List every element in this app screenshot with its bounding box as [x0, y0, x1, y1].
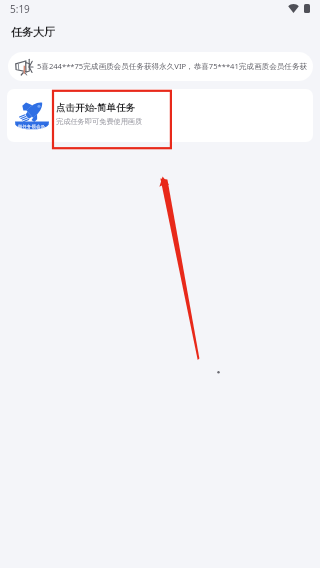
staticText: 任务大厅 [11, 25, 55, 39]
staticText: 做任务领会员 [18, 124, 46, 129]
staticText: 点击开始-简单任务 [56, 101, 136, 114]
button[interactable]: 做任务领会员 [7, 89, 313, 142]
staticText: 5:19 [10, 2, 30, 16]
button[interactable]: 5喜244***75完成画质会员任务获得永久VIP，恭喜75***41完成画质会… [8, 52, 313, 81]
staticText: 5喜244***75完成画质会员任务获得永久VIP，恭喜75***41完成画质会… [37, 61, 308, 71]
staticText: 完成任务即可免费使用画质 [56, 117, 143, 126]
